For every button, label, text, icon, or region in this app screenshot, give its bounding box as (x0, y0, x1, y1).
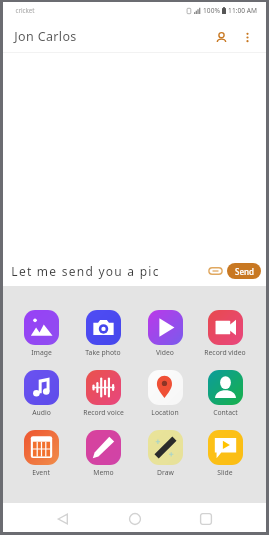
button[interactable]: Memo (74, 430, 132, 477)
staticText: Location (151, 408, 179, 417)
staticText: cricket (15, 6, 35, 14)
button[interactable]: Send (227, 263, 261, 279)
button[interactable]: Home (123, 507, 147, 531)
button[interactable]: Video (136, 310, 194, 357)
staticText: Record voice (83, 408, 124, 417)
button[interactable]: Event (12, 430, 70, 477)
staticText: Audio (32, 408, 51, 417)
staticText: Image (31, 348, 52, 357)
staticText: Jon Carlos (14, 28, 77, 45)
button[interactable]: Recent apps (194, 507, 218, 531)
staticText: Event (32, 468, 50, 477)
staticText: Let me send you a pic (11, 263, 160, 279)
staticText: Draw (157, 468, 174, 477)
button[interactable]: Location (136, 370, 194, 417)
staticText: 100% (203, 6, 220, 15)
staticText: Contact (213, 408, 238, 417)
staticText: 11:00 AM (228, 6, 257, 15)
staticText: Slide (217, 468, 233, 477)
staticText: Video (156, 348, 174, 357)
button[interactable]: Draw (136, 430, 194, 477)
button[interactable]: Attach (206, 262, 224, 280)
button[interactable]: Record video (196, 310, 254, 357)
button[interactable]: Record voice (74, 370, 132, 417)
button[interactable]: Audio (12, 370, 70, 417)
button[interactable]: Contact (196, 370, 254, 417)
button[interactable]: Take photo (74, 310, 132, 357)
staticText: Memo (93, 468, 114, 477)
button[interactable]: More options (240, 30, 254, 44)
button[interactable]: Slide (196, 430, 254, 477)
button[interactable]: Contact info (211, 27, 231, 47)
staticText: Record video (204, 348, 246, 357)
staticText: Take photo (85, 348, 121, 357)
staticText: Send (235, 266, 254, 277)
button[interactable]: Image (12, 310, 70, 357)
button[interactable]: Back (51, 507, 75, 531)
